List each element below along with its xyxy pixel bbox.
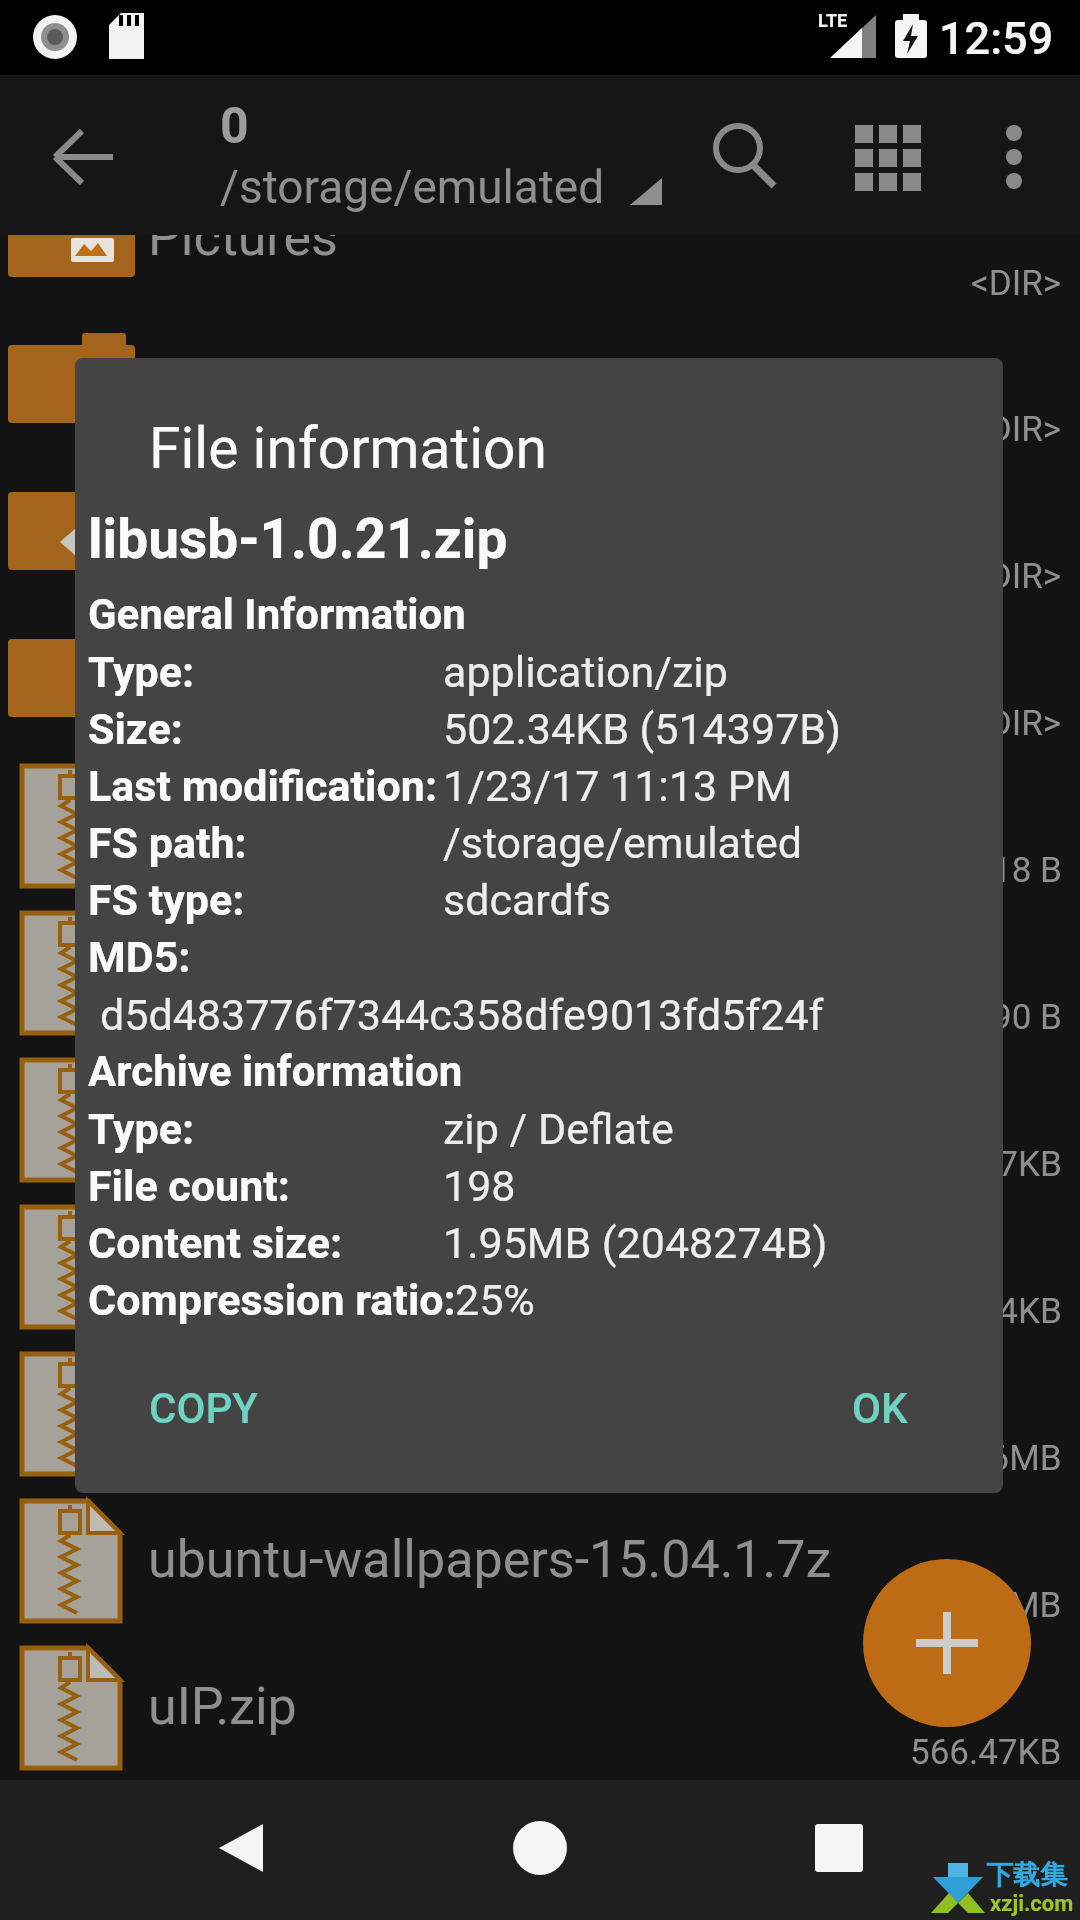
staticText: 1.95MB (2048274B) — [443, 1218, 828, 1268]
staticText: 2.66MB — [941, 1438, 1062, 1479]
staticText: MD5: — [88, 932, 191, 982]
staticText: File information — [149, 415, 548, 482]
button[interactable] — [0, 1340, 1080, 1486]
button[interactable] — [0, 899, 1080, 1045]
button[interactable] — [0, 752, 1080, 898]
staticText: zip / Deflate — [443, 1104, 674, 1154]
button[interactable] — [0, 458, 1080, 604]
staticText: d5d483776f7344c358dfe9013fd5f24f — [100, 990, 824, 1040]
staticText: 下载集 — [986, 1858, 1067, 1892]
staticText: Type: — [88, 647, 195, 697]
staticText: 198 — [443, 1161, 516, 1211]
staticText: libusb-1.0.21.zip — [88, 507, 508, 571]
staticText: uIP.zip — [148, 1676, 297, 1737]
staticText: 18 B — [992, 850, 1062, 891]
button[interactable]: COPY — [93, 1358, 313, 1458]
staticText: Size: — [88, 704, 183, 754]
staticText: Archive information — [88, 1047, 463, 1096]
staticText: /storage/emulated — [220, 160, 605, 214]
button[interactable] — [0, 605, 1080, 751]
staticText: LTE — [818, 10, 848, 31]
staticText: FS type: — [88, 875, 245, 925]
staticText: <DIR> — [971, 703, 1062, 744]
button[interactable] — [775, 1795, 905, 1905]
staticText: <DIR> — [971, 409, 1062, 450]
button[interactable] — [475, 1795, 605, 1905]
staticText: FS path: — [88, 818, 247, 868]
staticText: Pictures — [148, 207, 338, 268]
staticText: application/zip — [443, 647, 728, 697]
staticText: COPY — [149, 1384, 258, 1433]
staticText: ubuntu-wallpapers-15.04.1.7z — [148, 1529, 832, 1590]
staticText: 0 — [220, 97, 249, 156]
staticText: General Information — [88, 590, 466, 639]
button[interactable] — [863, 1559, 1031, 1727]
button[interactable] — [0, 311, 1080, 457]
staticText: sdcardfs — [443, 875, 611, 925]
staticText: File count: — [88, 1161, 290, 1211]
staticText: Content size: — [88, 1218, 343, 1268]
button[interactable] — [690, 107, 790, 207]
staticText: xzji.com — [990, 1891, 1074, 1917]
button[interactable]: OK — [795, 1358, 965, 1458]
button[interactable] — [966, 107, 1062, 207]
staticText: 204KB — [959, 1291, 1062, 1332]
button[interactable] — [0, 1193, 1080, 1339]
staticText: OK — [852, 1384, 908, 1433]
staticText: /storage/emulated — [443, 818, 803, 868]
button[interactable] — [35, 105, 135, 205]
staticText: 90 B — [992, 997, 1062, 1038]
button[interactable] — [0, 1046, 1080, 1192]
button[interactable] — [0, 1487, 1080, 1633]
staticText: 12:59 — [939, 12, 1054, 65]
button[interactable] — [838, 107, 938, 207]
staticText: <DIR> — [971, 556, 1062, 597]
staticText: Compression ratio: — [88, 1275, 456, 1325]
button[interactable] — [175, 1795, 305, 1905]
staticText: 1/23/17 11:13 PM — [443, 761, 793, 811]
staticText: 566.47KB — [910, 1732, 1062, 1773]
staticText: Last modification: — [88, 761, 438, 811]
staticText: <DIR> — [971, 263, 1062, 304]
staticText: 527KB — [959, 1144, 1062, 1185]
staticText: 25% — [455, 1275, 535, 1325]
staticText: Type: — [88, 1104, 195, 1154]
button[interactable] — [0, 165, 1080, 311]
staticText: 15.05MB — [921, 1585, 1062, 1626]
staticText: 502.34KB (514397B) — [443, 704, 842, 754]
button[interactable]: /storage/emulated — [220, 160, 670, 226]
button[interactable] — [0, 1634, 1080, 1780]
